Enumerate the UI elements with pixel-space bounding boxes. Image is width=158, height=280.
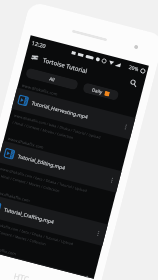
button[interactable]: Tutorial_Editing.mp4: [2, 142, 118, 192]
button[interactable]: All: [25, 67, 79, 90]
staticText: www.dhakaflix.com / beta / Dhaka / Tutor…: [0, 166, 88, 193]
button[interactable]: Daily: [82, 82, 120, 101]
staticText: / Hindi / Content / Movies / Collection: [12, 119, 74, 140]
staticText: www.dhakaflix.com: [0, 242, 17, 257]
button[interactable]: Tutorial_Harvesting.mp4: [16, 88, 131, 138]
staticText: All: [49, 75, 56, 83]
staticText: www.dhakaflix.com: [7, 136, 45, 150]
staticText: Tutorial_Building.mp4: [0, 252, 44, 266]
staticText: www.dhakaflix.com: [21, 83, 58, 97]
button[interactable]: Tutorial_Building.mp4: [0, 248, 90, 278]
staticText: www.dhakaflix.com: [0, 189, 31, 203]
staticText: 12:20: [31, 39, 47, 49]
staticText: Tutorial_Editing.mp4: [17, 153, 66, 172]
staticText: Daily: [91, 86, 104, 95]
staticText: / Hindi / Content / Movies / Collection: [0, 226, 46, 247]
staticText: www.dhakaflix.com / beta / Dhaka / Tutor…: [0, 219, 74, 247]
staticText: www.dhakaflix.com / beta / Dhaka / Tutor…: [14, 113, 102, 140]
staticText: 20%: [128, 64, 139, 73]
staticText: / Hindi / Content / Movies / Collection: [0, 173, 60, 193]
button[interactable]: Tutorial_Crafting.mp4: [0, 195, 104, 245]
button[interactable]: Menu: [29, 52, 40, 63]
staticText: Tortoise Tutorial: [42, 56, 88, 75]
staticText: HTC: [13, 270, 31, 280]
staticText: Tutorial_Crafting.mp4: [3, 206, 54, 226]
button[interactable]: Search: [127, 76, 140, 90]
staticText: Tutorial_Harvesting.mp4: [31, 100, 89, 121]
